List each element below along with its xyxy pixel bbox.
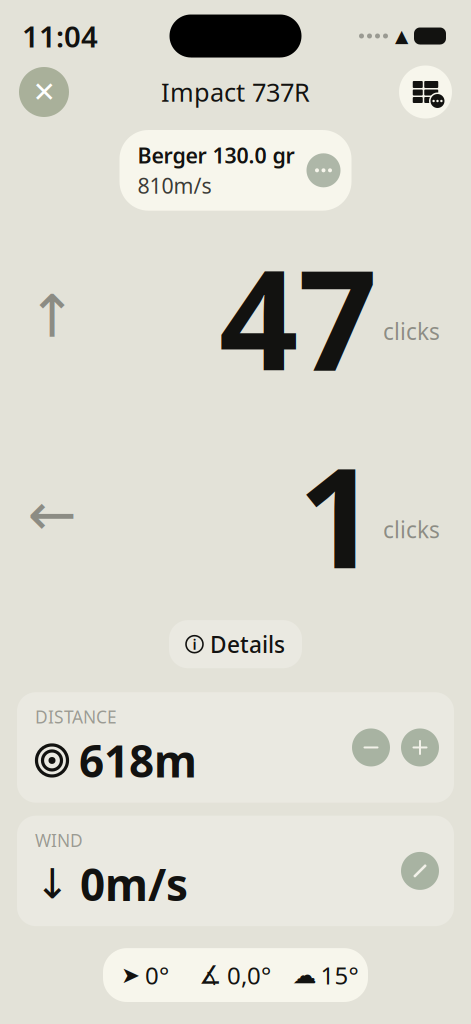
staticText: ✕ <box>32 76 55 108</box>
staticText: 47 <box>219 224 377 408</box>
button[interactable]: Edit wind <box>401 852 439 890</box>
button[interactable]: Decrease distance <box>352 728 390 766</box>
button[interactable]: Close <box>19 67 69 117</box>
staticText: ∡ <box>199 961 222 989</box>
staticText: 15° <box>320 959 358 991</box>
staticText: 618m <box>79 731 197 790</box>
staticText: ➤ <box>121 962 140 988</box>
button[interactable]: Increase distance <box>401 728 439 766</box>
staticText: Berger 130.0 gr <box>137 141 294 169</box>
button[interactable]: ➤ <box>103 948 368 1002</box>
staticText: 810m/s <box>137 171 211 200</box>
staticText: 0° <box>145 959 169 991</box>
staticText: 11:04 <box>22 16 98 55</box>
staticText: 1 <box>298 422 377 606</box>
staticText: i <box>192 634 196 654</box>
staticText: ▲ <box>395 26 408 46</box>
staticText: clicks <box>383 316 440 346</box>
staticText: ← <box>27 481 76 548</box>
staticText: ↓ <box>35 860 70 907</box>
button[interactable]: i <box>169 620 302 668</box>
staticText: Details <box>210 629 285 659</box>
staticText: Impact 737R <box>161 75 310 109</box>
staticText: WIND <box>35 829 83 852</box>
staticText: ☁ <box>292 961 316 989</box>
button[interactable]: Berger 130.0 gr <box>119 130 351 211</box>
staticText: 0m/s <box>80 855 188 913</box>
staticText: clicks <box>383 514 440 544</box>
staticText: 0,0° <box>227 959 271 991</box>
staticText: DISTANCE <box>35 705 117 728</box>
staticText: ↑ <box>27 283 76 350</box>
button[interactable]: Ballistic table <box>399 65 452 118</box>
